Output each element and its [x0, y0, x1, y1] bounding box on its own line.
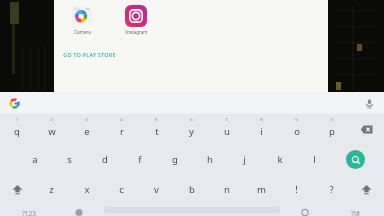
staticText: 1 [16, 117, 19, 123]
staticText: 5 [155, 117, 158, 123]
button[interactable]: ? [314, 174, 349, 204]
staticText: c [119, 183, 124, 196]
staticText: p [329, 125, 335, 138]
staticText: 0 [330, 117, 333, 123]
staticText: 2 [50, 117, 53, 123]
button[interactable]: Symbols [0, 204, 58, 216]
button[interactable]: l [297, 144, 332, 174]
button[interactable]: f [122, 144, 157, 174]
staticText: 6 [190, 117, 193, 123]
button[interactable]: s [52, 144, 87, 174]
staticText: 3 [85, 117, 88, 123]
button[interactable]: Shift [0, 174, 34, 204]
button[interactable]: Period [284, 204, 326, 216]
button[interactable]: 9 [279, 114, 314, 144]
staticText: k [277, 153, 283, 166]
button[interactable]: Google search [6, 95, 22, 111]
button[interactable]: 3 [69, 114, 104, 144]
button[interactable]: ! [279, 174, 314, 204]
button[interactable]: c [104, 174, 139, 204]
staticText: GO TO PLAY STORE [63, 51, 116, 58]
staticText: r [120, 125, 124, 138]
staticText: Instagram [125, 29, 148, 35]
staticText: a [32, 153, 38, 166]
staticText: u [224, 125, 230, 138]
button[interactable]: 1 [0, 114, 34, 144]
staticText: ! [295, 183, 298, 196]
staticText: 9 [295, 117, 298, 123]
button[interactable]: h [192, 144, 227, 174]
staticText: ?!# [351, 209, 360, 216]
button[interactable]: Camera [62, 3, 102, 37]
staticText: e [84, 125, 90, 138]
button[interactable]: Next [326, 204, 384, 216]
staticText: 7 [225, 117, 228, 123]
button[interactable]: j [227, 144, 262, 174]
staticText: h [207, 153, 213, 166]
button[interactable]: Search [338, 144, 373, 174]
button[interactable]: a [17, 144, 52, 174]
button[interactable]: 8 [244, 114, 279, 144]
staticText: y [189, 125, 194, 138]
staticText: w [48, 125, 56, 138]
button[interactable]: 6 [174, 114, 209, 144]
staticText: t [155, 125, 159, 138]
staticText: 4 [120, 117, 123, 123]
staticText: j [243, 153, 246, 166]
button[interactable]: 4 [104, 114, 139, 144]
button[interactable]: 7 [209, 114, 244, 144]
staticText: s [67, 153, 72, 166]
staticText: x [84, 183, 90, 196]
button[interactable]: Shift [349, 174, 384, 204]
button[interactable]: x [69, 174, 104, 204]
button[interactable]: n [209, 174, 244, 204]
staticText: Camera [74, 29, 91, 35]
button[interactable]: b [174, 174, 209, 204]
button[interactable]: 5 [139, 114, 174, 144]
button[interactable]: v [139, 174, 174, 204]
staticText: 8 [260, 117, 263, 123]
staticText: o [294, 125, 300, 138]
button[interactable]: 0 [314, 114, 349, 144]
staticText: n [224, 183, 230, 196]
staticText: v [154, 183, 159, 196]
button[interactable]: Instagram [116, 3, 156, 37]
button[interactable]: z [34, 174, 69, 204]
staticText: d [102, 153, 108, 166]
staticText: i [260, 125, 263, 138]
staticText: l [313, 153, 316, 166]
staticText: ? [329, 183, 334, 196]
staticText: g [172, 153, 178, 166]
button[interactable]: Backspace [349, 114, 384, 144]
button[interactable]: g [157, 144, 192, 174]
staticText: b [189, 183, 195, 196]
button[interactable]: GO TO PLAY STORE [54, 49, 122, 60]
staticText: q [14, 125, 20, 138]
button[interactable]: m [244, 174, 279, 204]
staticText: z [49, 183, 54, 196]
staticText: f [138, 153, 142, 166]
button[interactable]: Voice input [361, 95, 377, 111]
button[interactable]: 2 [34, 114, 69, 144]
button[interactable]: Emoji [58, 204, 100, 216]
button[interactable]: d [87, 144, 122, 174]
button[interactable]: k [262, 144, 297, 174]
staticText: ?123 [22, 209, 36, 216]
staticText: m [257, 183, 266, 196]
